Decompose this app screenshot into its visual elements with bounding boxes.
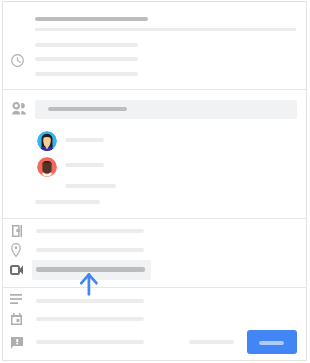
button[interactable]: Calendar	[11, 313, 22, 325]
button[interactable]: Video call	[10, 265, 23, 275]
button[interactable]	[32, 260, 151, 280]
button[interactable]: Notification	[11, 337, 23, 349]
button[interactable]	[35, 100, 297, 119]
button[interactable]: Location	[11, 243, 21, 257]
button[interactable]: Time	[11, 54, 24, 67]
button[interactable]	[37, 131, 57, 151]
button[interactable]: Guests	[12, 102, 26, 116]
button[interactable]: Room	[12, 225, 22, 237]
button[interactable]	[247, 330, 297, 354]
button[interactable]	[37, 157, 57, 177]
button[interactable]: Description	[10, 294, 22, 304]
